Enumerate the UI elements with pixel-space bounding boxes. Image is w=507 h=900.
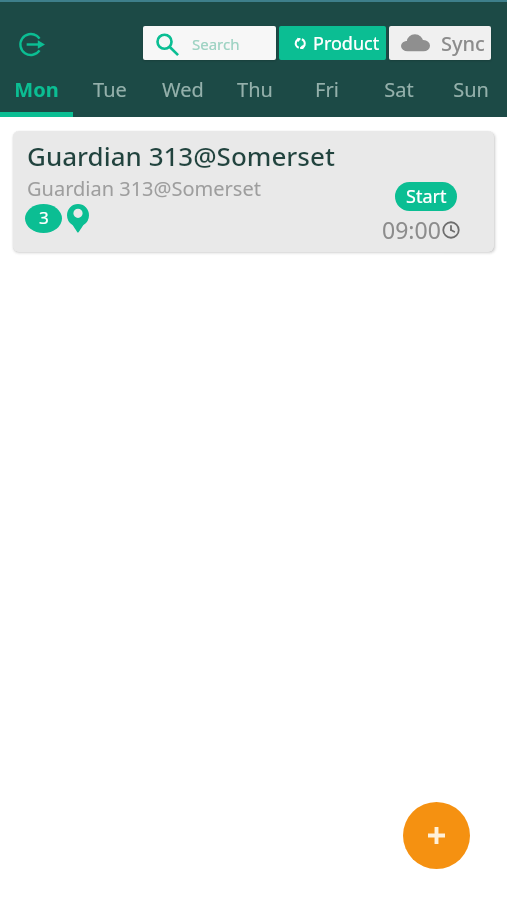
button[interactable]: Guardian 313@Somerset bbox=[13, 131, 494, 252]
staticText: Sun bbox=[453, 76, 489, 103]
button[interactable]: Logout bbox=[11, 22, 55, 66]
staticText: Guardian 313@Somerset bbox=[27, 175, 261, 202]
staticText: Guardian 313@Somerset bbox=[27, 138, 335, 173]
button[interactable]: Mon bbox=[0, 70, 73, 117]
staticText: 3 bbox=[39, 206, 49, 229]
button[interactable]: Wed bbox=[146, 70, 219, 117]
button[interactable]: Tue bbox=[73, 70, 146, 117]
staticText: Sat bbox=[384, 76, 414, 103]
staticText: Search bbox=[192, 34, 240, 54]
button[interactable]: Product bbox=[279, 26, 386, 60]
staticText: Tue bbox=[93, 76, 127, 103]
staticText: Thu bbox=[237, 76, 273, 103]
button[interactable]: Sat bbox=[363, 70, 435, 117]
button[interactable]: Fri bbox=[291, 70, 363, 117]
button[interactable]: Start bbox=[395, 182, 457, 211]
button[interactable]: Sun bbox=[435, 70, 507, 117]
button[interactable]: Thu bbox=[219, 70, 291, 117]
staticText: Wed bbox=[162, 76, 204, 103]
staticText: Product bbox=[313, 31, 380, 56]
staticText: 09:00 bbox=[382, 214, 441, 245]
staticText: Sync bbox=[441, 30, 485, 57]
staticText: Start bbox=[406, 184, 447, 209]
staticText: Mon bbox=[14, 76, 59, 103]
button[interactable]: Add bbox=[403, 802, 470, 869]
button[interactable]: Search bbox=[143, 26, 276, 60]
staticText: Fri bbox=[315, 76, 339, 103]
button[interactable]: Sync bbox=[389, 26, 491, 60]
